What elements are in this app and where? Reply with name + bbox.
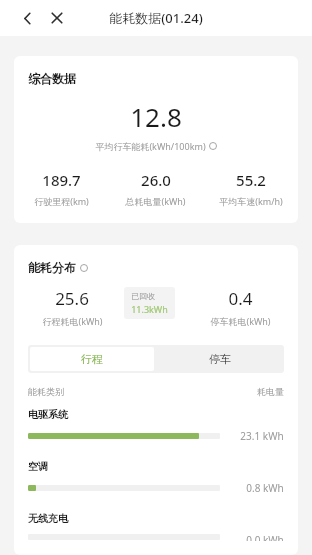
staticText: 无线充电 <box>28 512 68 525</box>
staticText: 平均行车能耗(kWh/100km) <box>95 140 206 152</box>
staticText: 已回收 <box>131 291 155 301</box>
staticText: 耗电量 <box>257 386 284 397</box>
staticText: 空调 <box>28 460 48 473</box>
staticText: 23.1 kWh <box>240 429 284 443</box>
staticText: 停车耗电(kWh) <box>210 315 271 327</box>
staticText: 189.7 <box>42 170 81 190</box>
button[interactable]: Back <box>14 5 40 31</box>
staticText: 25.6 <box>55 287 89 310</box>
staticText: 平均车速(km/h) <box>219 195 283 207</box>
staticText: 电驱系统 <box>28 408 68 421</box>
staticText: 行程 <box>81 352 103 366</box>
staticText: 行程耗电(kWh) <box>42 315 103 327</box>
staticText: 0.8 kWh <box>246 481 284 495</box>
staticText: 总耗电量(kWh) <box>125 195 186 207</box>
staticText: 行驶里程(km) <box>34 195 89 207</box>
staticText: 55.2 <box>236 170 266 190</box>
staticText: 0.0 kWh <box>246 533 284 541</box>
staticText: 12.8 <box>130 99 182 134</box>
staticText: 0.4 <box>228 287 253 310</box>
staticText: 26.0 <box>141 170 171 190</box>
staticText: 11.3kWh <box>131 303 168 315</box>
button[interactable]: Close <box>44 5 70 31</box>
staticText: 能耗类别 <box>28 386 64 397</box>
button[interactable]: 停车 <box>156 345 284 373</box>
staticText: 能耗分布 <box>28 260 76 275</box>
button[interactable]: 行程 <box>30 347 154 371</box>
staticText: 停车 <box>209 352 231 366</box>
staticText: 能耗数据(01.24) <box>109 9 203 27</box>
staticText: 综合数据 <box>28 71 76 86</box>
